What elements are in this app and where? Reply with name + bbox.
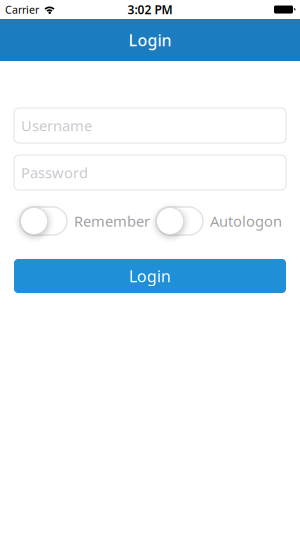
staticText: Username <box>21 116 92 135</box>
staticText: Autologon <box>210 211 282 231</box>
button[interactable]: Autologon <box>156 207 282 235</box>
staticText: Login <box>129 265 171 287</box>
button[interactable]: Username <box>14 108 286 143</box>
staticText: Remember <box>74 211 150 231</box>
button[interactable]: Password <box>14 155 286 190</box>
button[interactable]: Remember <box>20 207 150 235</box>
staticText: 3:02 PM <box>127 1 172 17</box>
staticText: Carrier <box>5 2 39 17</box>
button[interactable]: Login <box>14 259 286 293</box>
staticText: Login <box>128 29 171 51</box>
staticText: Password <box>21 163 88 182</box>
